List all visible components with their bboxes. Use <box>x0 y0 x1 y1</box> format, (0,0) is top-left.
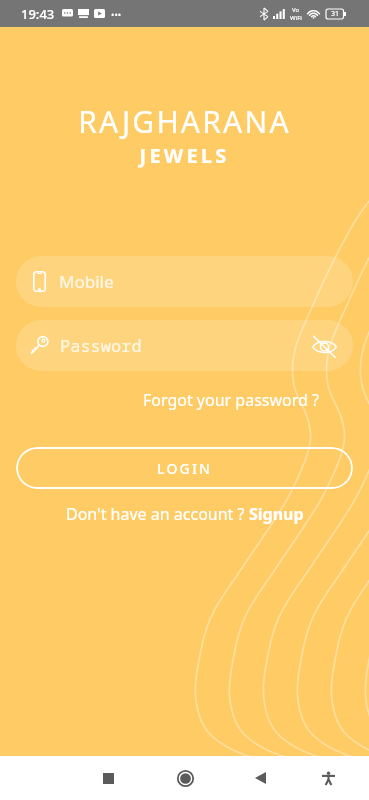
staticText: LOGIN <box>157 459 213 478</box>
staticText: WiFi <box>290 14 302 22</box>
staticText: 19:43 <box>21 5 55 23</box>
staticText: JEWELS <box>0 142 369 169</box>
button[interactable]: Home <box>163 756 207 800</box>
button[interactable]: Accessibility <box>306 756 350 800</box>
button[interactable]: Show password <box>309 331 339 361</box>
button[interactable]: Mobile <box>16 256 353 307</box>
staticText: ••• <box>111 8 122 20</box>
button[interactable]: Signup <box>249 503 304 525</box>
staticText: RAJGHARANA <box>0 101 369 142</box>
button[interactable]: Back <box>238 756 282 800</box>
staticText: Don't have an account ? <box>66 503 249 525</box>
staticText: Password <box>60 334 309 357</box>
button[interactable]: Recents <box>86 756 130 800</box>
staticText: Vo <box>292 6 300 14</box>
staticText: Mobile <box>59 270 114 293</box>
button[interactable]: LOGIN <box>16 447 353 489</box>
button[interactable]: Forgot your password ? <box>0 389 369 411</box>
staticText: 31 <box>331 9 340 19</box>
button[interactable]: Password <box>16 320 353 371</box>
